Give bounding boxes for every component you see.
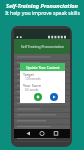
button[interactable]: Self Training Pronunciation (14, 39, 70, 54)
staticText: 100 words (25, 77, 41, 81)
button[interactable]: Play (50, 93, 58, 101)
staticText: Self Training Pronunciation (21, 44, 64, 49)
button[interactable]: Home (33, 129, 51, 138)
button[interactable]: Update Your Content (20, 63, 65, 71)
staticText: 62 words (25, 88, 39, 92)
button[interactable]: Back (14, 129, 32, 138)
button[interactable]: Record (34, 93, 42, 101)
button[interactable]: Recents (52, 129, 70, 138)
staticText: Self-Training Pronunciation (6, 2, 78, 10)
staticText: Update Your Content (26, 65, 60, 70)
staticText: It help you improve speak skills (5, 10, 80, 17)
staticText: Your Score (23, 83, 41, 88)
staticText: Target (23, 72, 34, 77)
